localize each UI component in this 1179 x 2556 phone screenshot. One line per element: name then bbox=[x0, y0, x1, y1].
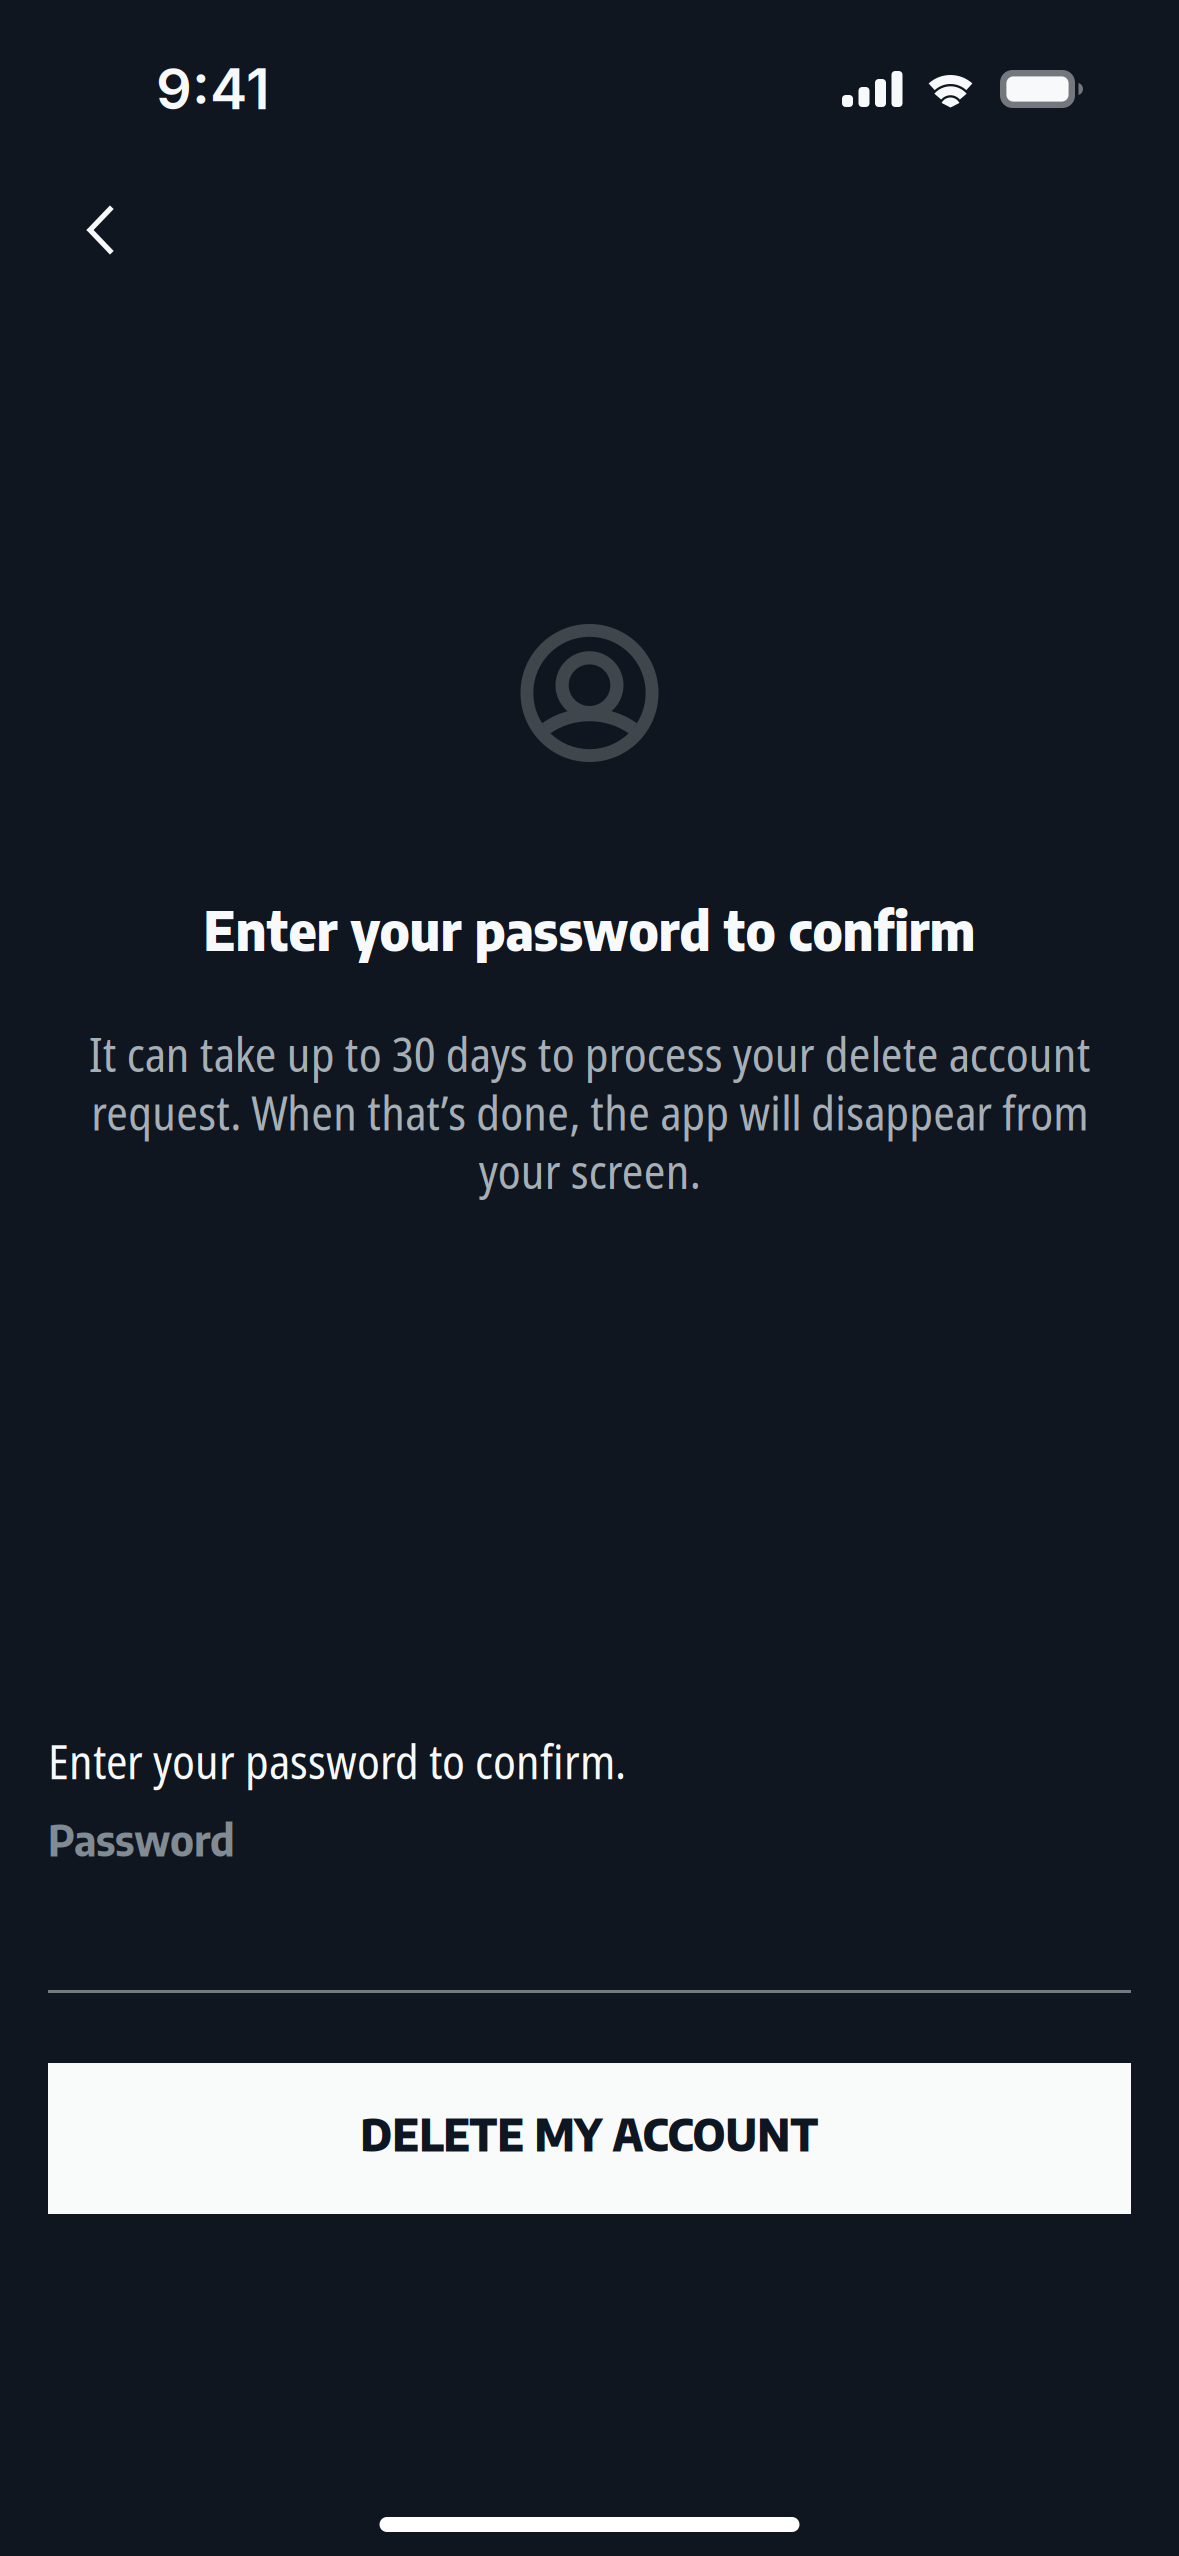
staticText: Password bbox=[48, 1812, 235, 1866]
staticText: DELETE MY ACCOUNT bbox=[360, 2106, 818, 2161]
staticText: Enter your password to confirm. bbox=[48, 1729, 626, 1793]
staticText: 9:41 bbox=[156, 55, 270, 123]
staticText: It can take up to 30 days to process you… bbox=[88, 1025, 1090, 1200]
staticText: Enter your password to confirm bbox=[203, 896, 975, 963]
button[interactable]: Password bbox=[48, 1812, 1131, 1993]
button[interactable]: DELETE MY ACCOUNT bbox=[48, 2063, 1131, 2214]
button[interactable]: Back bbox=[0, 110, 132, 242]
